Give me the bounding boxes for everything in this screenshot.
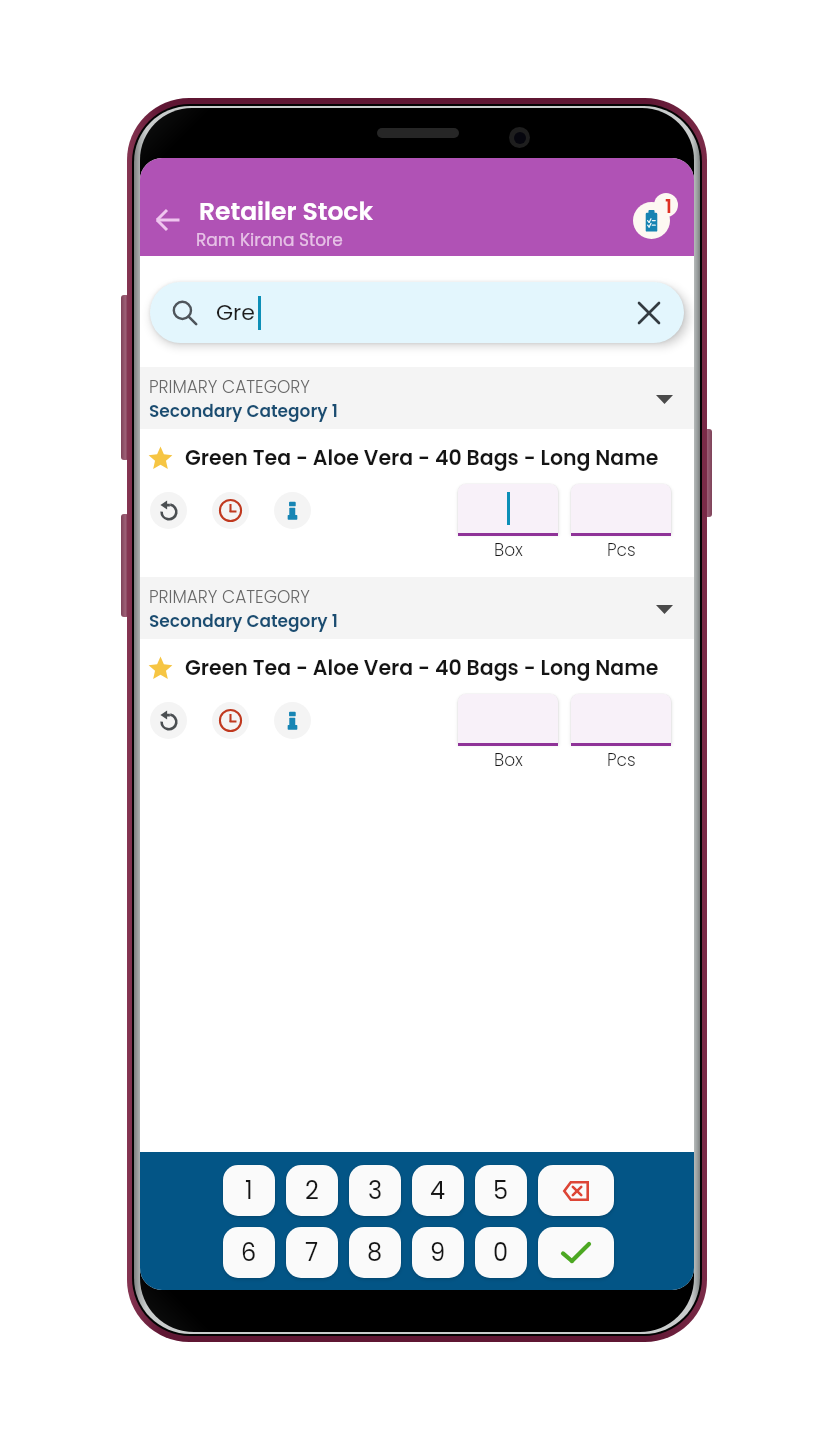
button[interactable]: History: [212, 492, 249, 529]
staticText: 4: [430, 1174, 446, 1208]
button[interactable]: Confirm: [538, 1227, 614, 1278]
button[interactable]: History: [212, 702, 249, 739]
staticText: 6: [241, 1236, 257, 1270]
staticText: Green Tea - Aloe Vera - 40 Bags - Long N…: [185, 443, 659, 472]
button[interactable]: Reset: [150, 492, 187, 529]
staticText: Ram Kirana Store: [196, 228, 343, 252]
button[interactable]: 3: [349, 1165, 401, 1216]
button[interactable]: Orders: [630, 191, 680, 241]
button[interactable]: Info: [274, 702, 311, 739]
button[interactable]: 1: [223, 1165, 275, 1216]
staticText: Pcs: [607, 748, 636, 772]
staticText: 1: [245, 1174, 253, 1208]
staticText: Secondary Category 1: [149, 399, 338, 423]
staticText: Retailer Stock: [199, 194, 374, 229]
staticText: 5: [493, 1174, 509, 1208]
staticText: 0: [493, 1236, 509, 1270]
staticText: 9: [430, 1236, 446, 1270]
button[interactable]: Reset: [150, 702, 187, 739]
button[interactable]: Back: [148, 200, 188, 240]
staticText: 7: [305, 1236, 319, 1270]
button[interactable]: Info: [274, 492, 311, 529]
button[interactable]: 5: [475, 1165, 527, 1216]
button[interactable]: Backspace: [538, 1165, 614, 1216]
button[interactable]: 9: [412, 1227, 464, 1278]
staticText: 1: [665, 193, 672, 217]
button[interactable]: 8: [349, 1227, 401, 1278]
staticText: Gre: [216, 297, 255, 328]
button[interactable]: PRIMARY CATEGORY: [140, 577, 694, 639]
button[interactable]: 7: [286, 1227, 338, 1278]
staticText: 2: [305, 1174, 319, 1208]
staticText: 8: [367, 1236, 383, 1270]
button[interactable]: 6: [223, 1227, 275, 1278]
staticText: Box: [494, 748, 523, 772]
staticText: Pcs: [607, 538, 636, 562]
staticText: Box: [494, 538, 523, 562]
staticText: Secondary Category 1: [149, 609, 338, 633]
button[interactable]: [458, 484, 558, 533]
staticText: PRIMARY CATEGORY: [149, 585, 310, 609]
staticText: Green Tea - Aloe Vera - 40 Bags - Long N…: [185, 653, 659, 682]
staticText: 3: [368, 1174, 383, 1208]
staticText: PRIMARY CATEGORY: [149, 375, 310, 399]
button[interactable]: 0: [475, 1227, 527, 1278]
button[interactable]: 4: [412, 1165, 464, 1216]
button[interactable]: Clear search: [634, 298, 664, 328]
button[interactable]: PRIMARY CATEGORY: [140, 367, 694, 429]
button[interactable]: Gre: [150, 282, 684, 343]
button[interactable]: 2: [286, 1165, 338, 1216]
